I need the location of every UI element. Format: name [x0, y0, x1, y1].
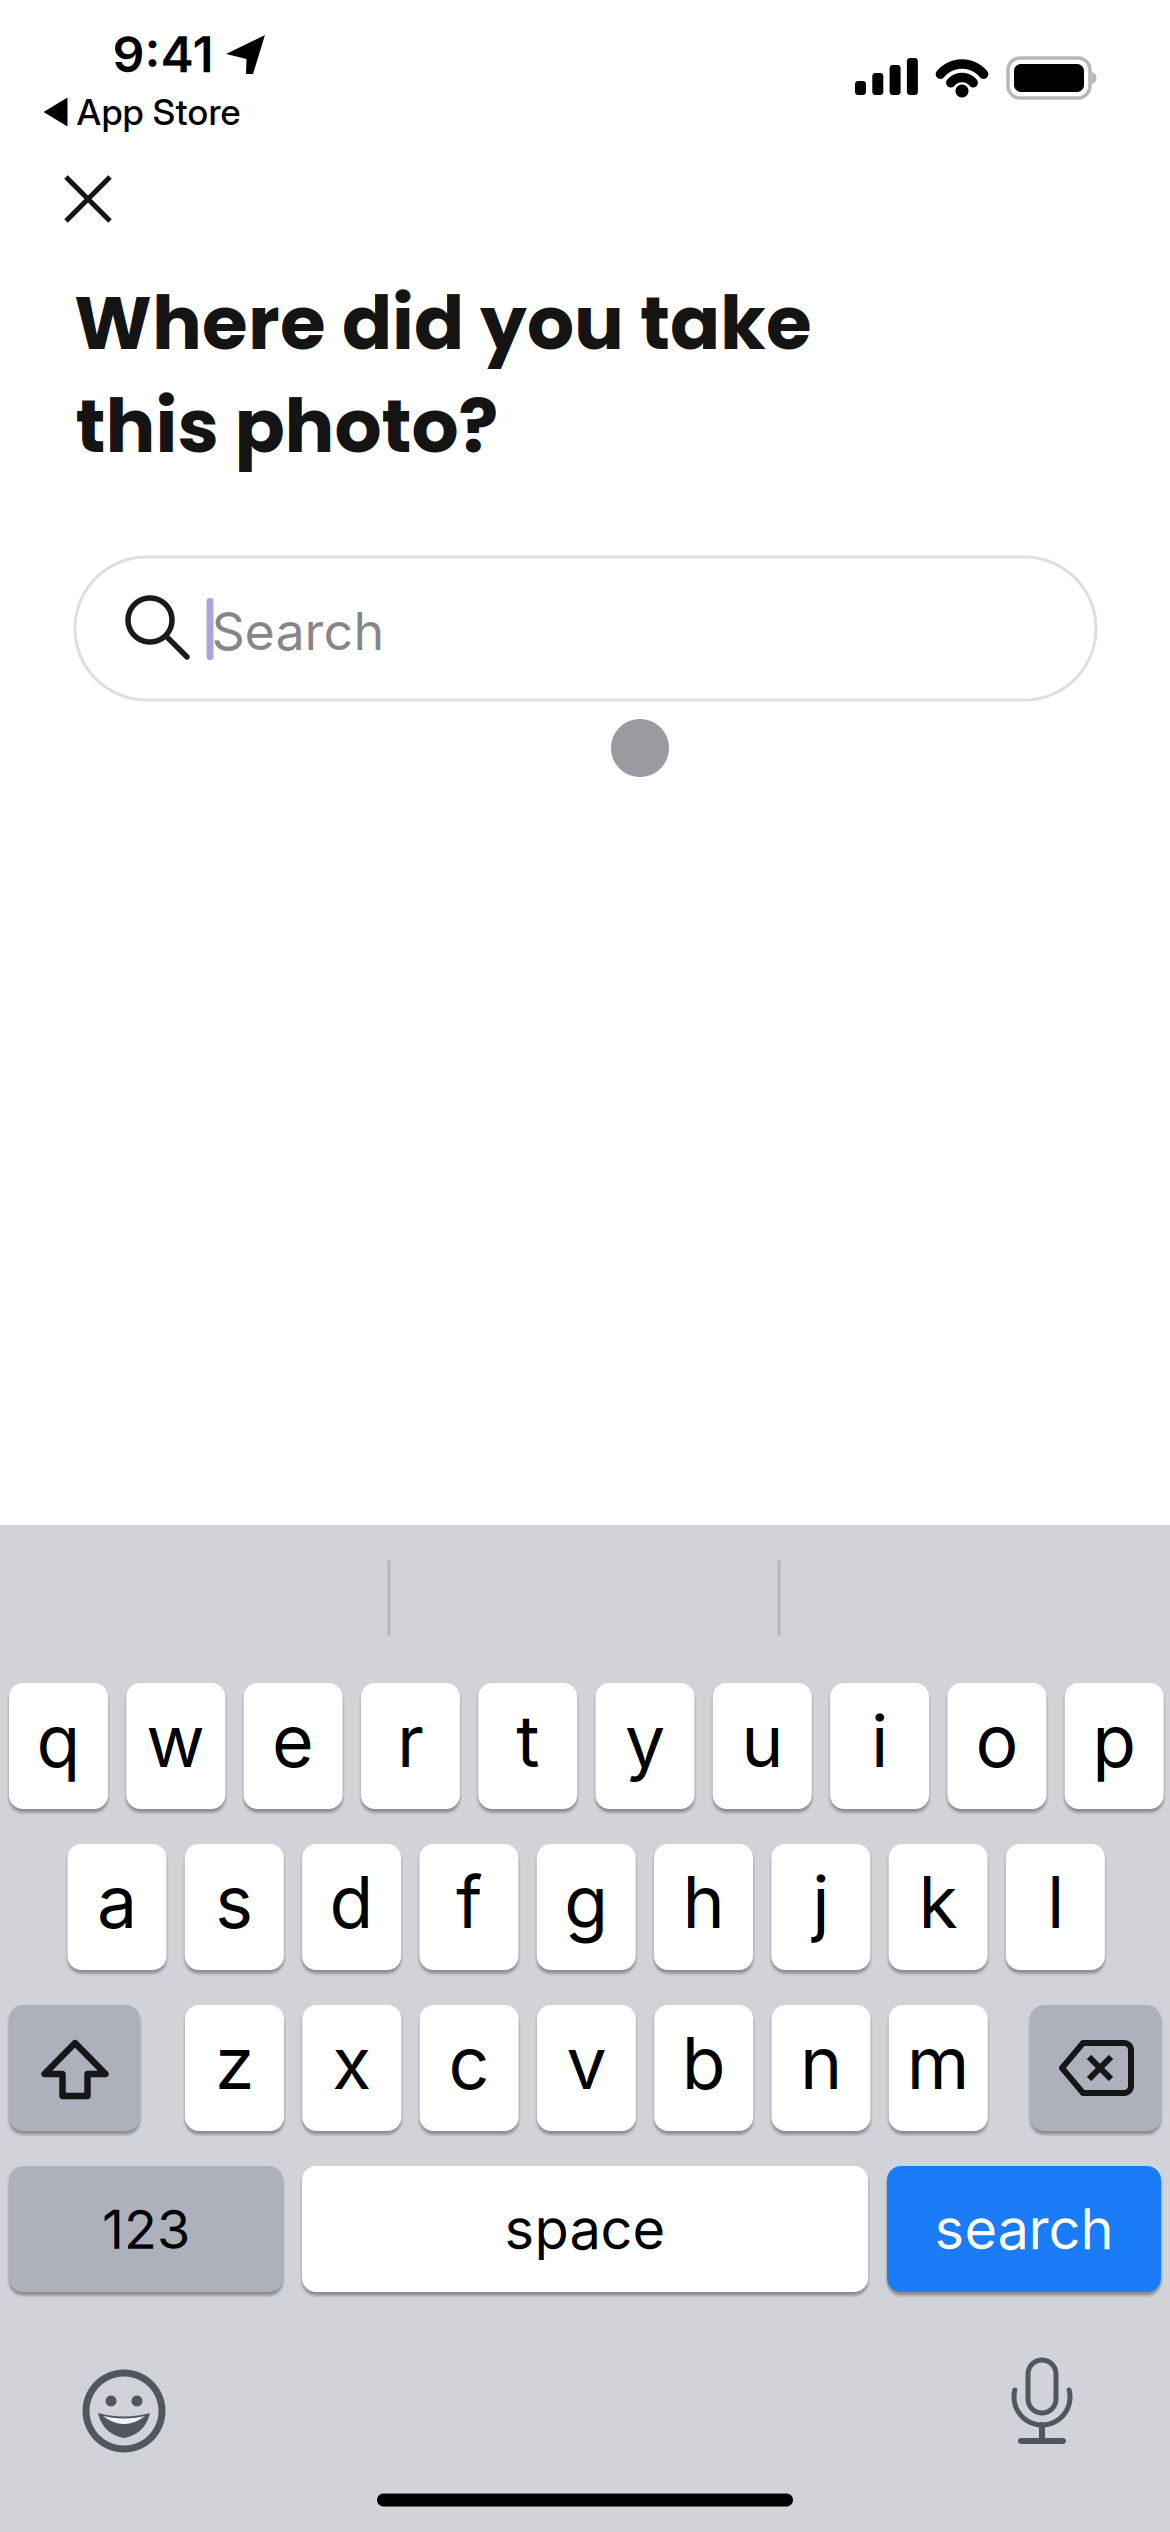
button[interactable]: l — [1006, 1844, 1105, 1970]
button[interactable]: j — [771, 1844, 870, 1970]
button[interactable]: search — [887, 2166, 1161, 2292]
button[interactable]: i — [830, 1683, 929, 1809]
staticText: b — [682, 2020, 726, 2106]
staticText: r — [397, 1698, 424, 1784]
button[interactable]: f — [419, 1844, 518, 1970]
staticText: d — [330, 1859, 374, 1945]
staticText: this photo? — [75, 374, 498, 478]
button[interactable]: y — [595, 1683, 694, 1809]
button[interactable]: u — [713, 1683, 812, 1809]
staticText: k — [919, 1859, 958, 1945]
button[interactable]: e — [244, 1683, 343, 1809]
staticText: n — [800, 2020, 842, 2106]
staticText: s — [215, 1859, 253, 1945]
button[interactable]: Search — [0, 0, 1170, 2532]
staticText: g — [564, 1859, 608, 1945]
staticText: q — [36, 1698, 80, 1784]
staticText: f — [456, 1859, 482, 1945]
button[interactable]: Delete — [1030, 2005, 1161, 2131]
button[interactable]: h — [654, 1844, 753, 1970]
staticText: i — [871, 1698, 888, 1784]
staticText: l — [1047, 1859, 1064, 1945]
button[interactable]: App Store — [43, 90, 240, 134]
staticText: space — [504, 2195, 665, 2263]
staticText: 9:41 — [112, 24, 213, 84]
staticText: c — [449, 2020, 490, 2106]
staticText: a — [97, 1859, 137, 1945]
staticText: v — [566, 2020, 606, 2106]
button[interactable]: c — [420, 2005, 519, 2131]
button[interactable]: n — [771, 2005, 870, 2131]
button[interactable]: x — [302, 2005, 401, 2131]
button[interactable]: r — [361, 1683, 460, 1809]
staticText: x — [332, 2020, 371, 2106]
staticText: search — [934, 2195, 1113, 2263]
button[interactable]: q — [9, 1683, 108, 1809]
button[interactable]: v — [537, 2005, 636, 2131]
staticText: 123 — [102, 2196, 190, 2262]
staticText: h — [682, 1859, 724, 1945]
button[interactable]: d — [302, 1844, 401, 1970]
staticText: j — [812, 1859, 829, 1945]
staticText: m — [907, 2020, 970, 2106]
button[interactable]: k — [889, 1844, 988, 1970]
button[interactable]: a — [67, 1844, 166, 1970]
button[interactable]: Dictation — [992, 2355, 1092, 2455]
staticText: u — [741, 1698, 783, 1784]
staticText: Where did you take — [74, 271, 812, 375]
button[interactable]: space — [302, 2166, 868, 2292]
button[interactable]: z — [185, 2005, 284, 2131]
staticText: z — [215, 2020, 254, 2106]
staticText: w — [146, 1698, 205, 1784]
button[interactable]: w — [126, 1683, 225, 1809]
button[interactable]: Emoji — [74, 2361, 174, 2461]
button[interactable]: t — [478, 1683, 577, 1809]
button[interactable]: m — [889, 2005, 988, 2131]
button[interactable]: 123 — [9, 2166, 283, 2292]
staticText: y — [625, 1698, 665, 1784]
staticText: p — [1092, 1698, 1136, 1784]
staticText: Search — [211, 599, 384, 662]
button[interactable]: s — [185, 1844, 284, 1970]
button[interactable]: g — [537, 1844, 636, 1970]
staticText: App Store — [76, 90, 240, 134]
button[interactable]: Shift — [9, 2005, 140, 2131]
button[interactable]: Close — [56, 167, 120, 231]
staticText: t — [516, 1698, 539, 1784]
button[interactable]: o — [947, 1683, 1046, 1809]
button[interactable]: p — [1065, 1683, 1164, 1809]
staticText: e — [272, 1698, 314, 1784]
staticText: o — [975, 1698, 1018, 1784]
button[interactable]: b — [654, 2005, 753, 2131]
